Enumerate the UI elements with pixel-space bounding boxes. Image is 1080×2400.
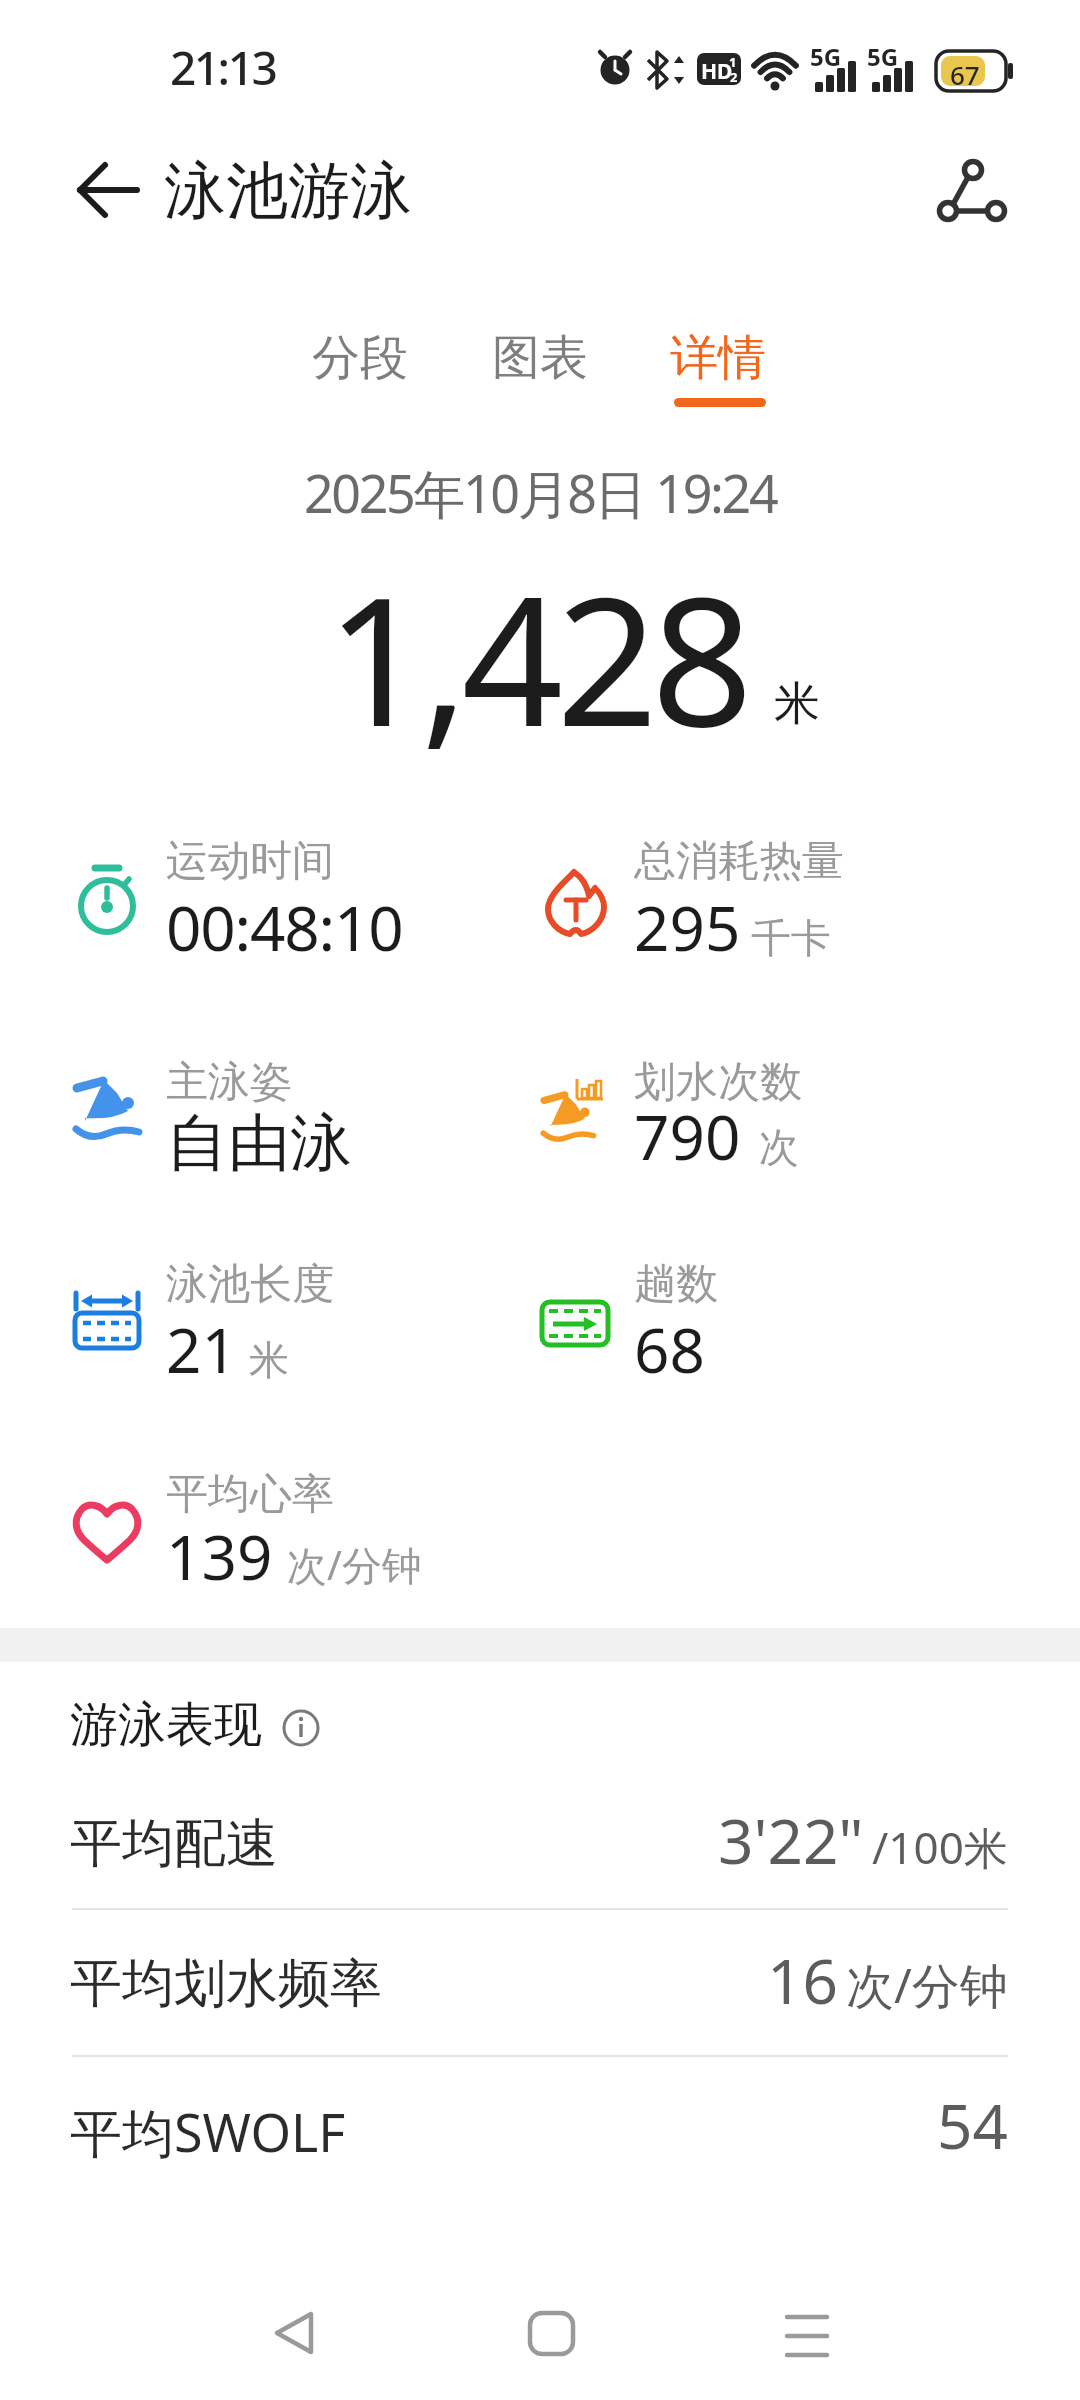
staticText: 平均配速 — [70, 1811, 278, 1877]
staticText: 图表 — [492, 328, 588, 388]
staticText: 21 — [166, 1307, 237, 1391]
button[interactable] — [460, 2290, 640, 2380]
staticText: 游泳表现 — [70, 1695, 262, 1755]
staticText: 68 — [634, 1307, 705, 1391]
staticText: 米 — [249, 1335, 289, 1385]
staticText: 划水次数 — [634, 1056, 802, 1109]
staticText: 平均划水频率 — [70, 1951, 382, 2017]
button[interactable] — [915, 150, 1035, 240]
staticText: 139 — [166, 1514, 273, 1598]
staticText: 次/分钟 — [287, 1537, 422, 1592]
staticText: 主泳姿 — [166, 1056, 292, 1109]
button[interactable] — [660, 315, 780, 415]
staticText: 详情 — [670, 328, 766, 388]
staticText: 5G — [810, 40, 842, 73]
staticText: 1 — [729, 53, 737, 71]
staticText: 2025年10月8日 19:24 — [304, 457, 777, 528]
staticText: 自由泳 — [166, 1104, 352, 1182]
staticText: 米 — [774, 675, 820, 733]
staticText: 295 — [634, 885, 741, 969]
button[interactable] — [720, 2290, 900, 2380]
staticText: 平均SWOLF — [70, 2096, 346, 2167]
button[interactable] — [40, 150, 160, 240]
staticText: 67 — [950, 57, 980, 92]
staticText: 5G — [867, 40, 899, 73]
staticText: 790 — [634, 1094, 741, 1178]
staticText: 54 — [937, 2083, 1008, 2167]
button[interactable] — [480, 315, 600, 415]
staticText: 1,428 — [326, 536, 746, 778]
button[interactable] — [210, 2290, 390, 2380]
staticText: 次 — [759, 1122, 799, 1172]
staticText: 3'22" — [718, 1798, 864, 1882]
staticText: 2 — [730, 68, 738, 86]
staticText: 泳池长度 — [166, 1258, 334, 1311]
staticText: 总消耗热量 — [634, 835, 844, 888]
staticText: 分段 — [312, 328, 408, 388]
staticText: 趟数 — [634, 1258, 718, 1311]
staticText: 16 — [767, 1938, 838, 2022]
staticText: 平均心率 — [166, 1468, 334, 1521]
button[interactable] — [300, 315, 420, 415]
button[interactable] — [270, 1700, 330, 1760]
staticText: 千卡 — [751, 913, 831, 963]
staticText: 次/分钟 — [846, 1952, 1008, 2018]
staticText: 21:13 — [170, 36, 276, 99]
staticText: /100米 — [872, 1817, 1008, 1877]
staticText: 泳池游泳 — [164, 152, 412, 230]
staticText: 00:48:10 — [166, 885, 403, 969]
staticText: HD — [701, 57, 733, 86]
staticText: 运动时间 — [166, 835, 334, 888]
